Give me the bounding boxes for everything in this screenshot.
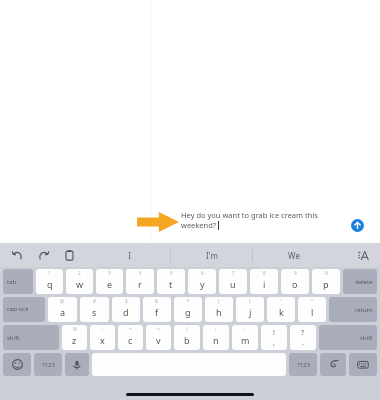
button[interactable]: $ — [112, 297, 140, 322]
button[interactable]: ?123 — [289, 353, 317, 376]
staticText: k — [279, 306, 284, 318]
button[interactable]: 3 — [96, 269, 123, 294]
staticText: t — [169, 278, 173, 290]
staticText: delete — [355, 278, 373, 286]
button[interactable]: - — [90, 325, 115, 350]
staticText: i — [263, 278, 266, 290]
button[interactable]: 8 — [250, 269, 278, 294]
staticText: return — [355, 306, 373, 314]
button[interactable]: Hey do you want to grab ice cream this — [181, 210, 331, 230]
staticText: . — [302, 338, 304, 348]
staticText: 4 — [139, 270, 142, 276]
staticText: c — [128, 334, 133, 346]
staticText: I — [128, 250, 131, 261]
staticText: b — [184, 334, 190, 346]
staticText: l — [311, 306, 314, 318]
staticText: u — [230, 278, 236, 290]
button[interactable]: ( — [205, 297, 233, 322]
staticText: e — [107, 278, 113, 290]
staticText: 9 — [294, 270, 297, 276]
button[interactable]: 2 — [66, 269, 93, 294]
staticText: 0 — [325, 270, 328, 276]
staticText: v — [156, 334, 161, 346]
staticText: , — [273, 338, 275, 348]
staticText: / — [186, 326, 188, 332]
button[interactable]: Emoji — [3, 353, 31, 376]
button[interactable]: : — [232, 325, 258, 350]
staticText: z — [72, 334, 77, 346]
button[interactable]: " — [298, 297, 326, 322]
staticText: p — [323, 278, 329, 290]
button[interactable]: + — [118, 325, 143, 350]
button[interactable]: 1 — [36, 269, 63, 294]
staticText: 2 — [78, 270, 81, 276]
button[interactable]: % — [62, 325, 87, 350]
staticText: a — [60, 306, 66, 318]
button[interactable]: 9 — [281, 269, 309, 294]
staticText: ; — [215, 326, 217, 332]
button[interactable]: Send — [346, 214, 368, 236]
button[interactable]: Undo — [10, 248, 25, 263]
staticText: ?123 — [297, 361, 310, 369]
staticText: shift — [7, 334, 20, 342]
staticText: # — [93, 298, 96, 304]
button[interactable]: ! — [261, 325, 287, 350]
staticText: f — [155, 306, 159, 318]
staticText: ? — [301, 328, 305, 338]
button[interactable]: ' — [267, 297, 295, 322]
staticText: d — [123, 306, 129, 318]
button[interactable]: @ — [48, 297, 77, 322]
button[interactable]: I'm — [171, 243, 252, 267]
button[interactable]: * — [174, 297, 202, 322]
button[interactable]: ; — [203, 325, 229, 350]
button[interactable]: = — [146, 325, 171, 350]
staticText: 1 — [48, 270, 51, 276]
button[interactable]: ? — [290, 325, 316, 350]
button[interactable]: 6 — [188, 269, 216, 294]
staticText: n — [213, 334, 219, 346]
staticText: I'm — [206, 250, 218, 261]
staticText: @ — [60, 298, 65, 304]
button[interactable]: tab — [3, 269, 33, 294]
button[interactable]: 5 — [157, 269, 185, 294]
button[interactable]: Voice input — [65, 353, 89, 376]
button[interactable]: shift — [319, 325, 377, 350]
button[interactable]: caps lock — [3, 297, 45, 322]
button[interactable]: 7 — [219, 269, 247, 294]
staticText: + — [129, 326, 132, 332]
button[interactable]: Paste — [62, 248, 77, 263]
button[interactable]: shift — [3, 325, 59, 350]
staticText: j — [249, 306, 252, 318]
button[interactable]: # — [80, 297, 109, 322]
staticText: caps lock — [7, 306, 29, 313]
staticText: s — [92, 306, 97, 318]
staticText: - — [102, 326, 104, 332]
button[interactable]: & — [143, 297, 171, 322]
button[interactable]: 4 — [126, 269, 154, 294]
staticText: 7 — [232, 270, 235, 276]
button[interactable]: We — [253, 243, 334, 267]
staticText: ?123 — [42, 361, 55, 369]
staticText: " — [311, 298, 313, 304]
staticText: = — [157, 326, 160, 332]
button[interactable]: Hide keyboard — [349, 353, 377, 376]
staticText: w — [76, 278, 84, 290]
staticText: m — [241, 334, 250, 346]
button[interactable]: ?123 — [34, 353, 62, 376]
staticText: ( — [218, 298, 220, 304]
staticText: weekend? — [181, 220, 217, 230]
staticText: tab — [7, 278, 17, 286]
button[interactable]: delete — [343, 269, 377, 294]
staticText: y — [200, 278, 205, 290]
button[interactable]: Formatting — [355, 247, 371, 263]
button[interactable]: Handwriting — [320, 353, 346, 376]
staticText: o — [292, 278, 298, 290]
staticText: % — [73, 326, 77, 332]
button[interactable]: return — [329, 297, 377, 322]
button[interactable]: I — [88, 243, 170, 267]
button[interactable]: Redo — [36, 248, 51, 263]
button[interactable]: ) — [236, 297, 264, 322]
button[interactable]: / — [174, 325, 200, 350]
button[interactable]: 0 — [312, 269, 340, 294]
